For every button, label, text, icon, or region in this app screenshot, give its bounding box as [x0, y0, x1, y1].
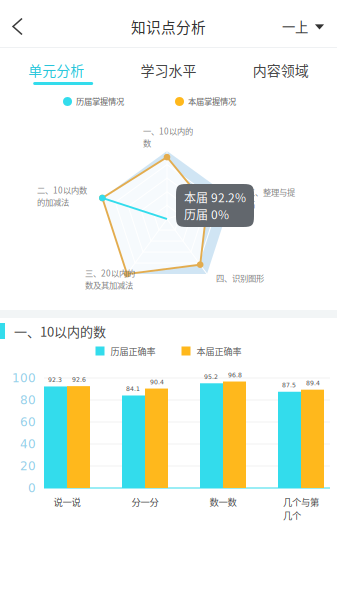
button[interactable]: 学习水平 — [112, 48, 225, 86]
staticText: 20 — [20, 459, 36, 473]
staticText: 数一数 — [209, 495, 236, 508]
staticText: 84.1 — [126, 385, 140, 392]
staticText: 分一分 — [131, 495, 158, 508]
staticText: 60 — [20, 415, 36, 429]
staticText: 三、20以内的 数及其加减法 — [85, 267, 135, 291]
staticText: 二、10以内数 的加减法 — [37, 184, 87, 208]
button[interactable]: 单元分析 — [0, 48, 112, 86]
staticText: 0 — [28, 481, 36, 495]
button[interactable]: 一上 — [282, 0, 337, 47]
staticText: 知识点分析 — [131, 16, 206, 37]
staticText: 89.4 — [306, 380, 320, 387]
staticText: 说一说 — [53, 495, 80, 508]
staticText: 四、识别图形 — [216, 272, 264, 284]
staticText: 一上 — [282, 17, 308, 36]
staticText: 历届 0% — [184, 205, 229, 223]
button[interactable]: 内容领域 — [225, 48, 337, 86]
staticText: 80 — [20, 393, 36, 407]
staticText: 100 — [12, 371, 36, 385]
staticText: 一、10以内的数 — [14, 321, 106, 340]
staticText: 一、10以内的 数 — [143, 125, 193, 149]
staticText: 本届正确率 — [196, 344, 241, 357]
staticText: 历届正确率 — [110, 344, 155, 357]
staticText: 90.4 — [150, 378, 164, 386]
staticText: 五、整理与提 高 — [247, 186, 295, 210]
staticText: 几个与第 几个 — [283, 495, 319, 522]
staticText: 本届掌握情况 — [188, 95, 236, 107]
button[interactable]: 返回 — [0, 0, 35, 47]
staticText: 本届 92.2% — [184, 188, 246, 206]
staticText: 历届掌握情况 — [76, 95, 124, 107]
staticText: 95.2 — [204, 373, 218, 380]
staticText: 87.5 — [282, 382, 296, 389]
staticText: 96.8 — [228, 371, 242, 379]
staticText: 92.3 — [48, 376, 62, 383]
staticText: 92.6 — [72, 376, 86, 383]
staticText: 学习水平 — [140, 60, 196, 80]
staticText: 单元分析 — [28, 60, 84, 80]
staticText: 40 — [20, 437, 36, 451]
staticText: 内容领域 — [253, 60, 309, 80]
